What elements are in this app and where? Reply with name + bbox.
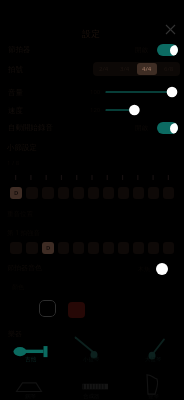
staticText: 吉他 (25, 356, 36, 363)
button[interactable]: 鋼琴 (0, 373, 61, 400)
staticText: 自動開始錄音 (8, 123, 53, 132)
button[interactable]: Colour red (68, 302, 85, 318)
button[interactable]: 音量 (0, 84, 184, 100)
button[interactable]: 節拍器 (0, 41, 184, 58)
staticText: 節拍器 (8, 45, 31, 54)
button[interactable]: 合成器 (61, 373, 122, 400)
button[interactable]: D (10, 187, 22, 199)
staticText: 4/4 (142, 65, 152, 73)
staticText: 拍號 (8, 65, 23, 74)
button[interactable]: Colour light (39, 300, 56, 317)
button[interactable]: 速度 (0, 102, 184, 118)
button[interactable]: Close (160, 19, 181, 40)
staticText: 豎琴 (148, 393, 159, 400)
button[interactable]: D (42, 242, 54, 254)
staticText: D (14, 189, 19, 197)
staticText: 6/8 (164, 65, 174, 73)
staticText: 大提琴 (145, 356, 162, 363)
button[interactable]: Select sound (156, 263, 168, 275)
staticText: 小節設定 (7, 143, 37, 152)
staticText: 樂器 (8, 329, 22, 338)
button[interactable]: 小提琴 (61, 336, 122, 363)
button[interactable]: 大提琴 (123, 336, 184, 363)
staticText: 音量 (8, 88, 23, 97)
button[interactable]: 4/4 (137, 63, 157, 75)
staticText: 2/4 (99, 65, 109, 73)
button[interactable]: 自動開始錄音 (0, 119, 184, 136)
button[interactable]: Toggle (157, 122, 178, 134)
staticText: D (46, 244, 51, 252)
button[interactable]: 吉他 (0, 336, 61, 363)
button[interactable]: Toggle (157, 44, 178, 56)
staticText: 小提琴 (83, 356, 100, 363)
staticText: 設定 (82, 28, 100, 39)
staticText: 3/4 (120, 65, 130, 73)
staticText: 速度 (8, 106, 23, 115)
